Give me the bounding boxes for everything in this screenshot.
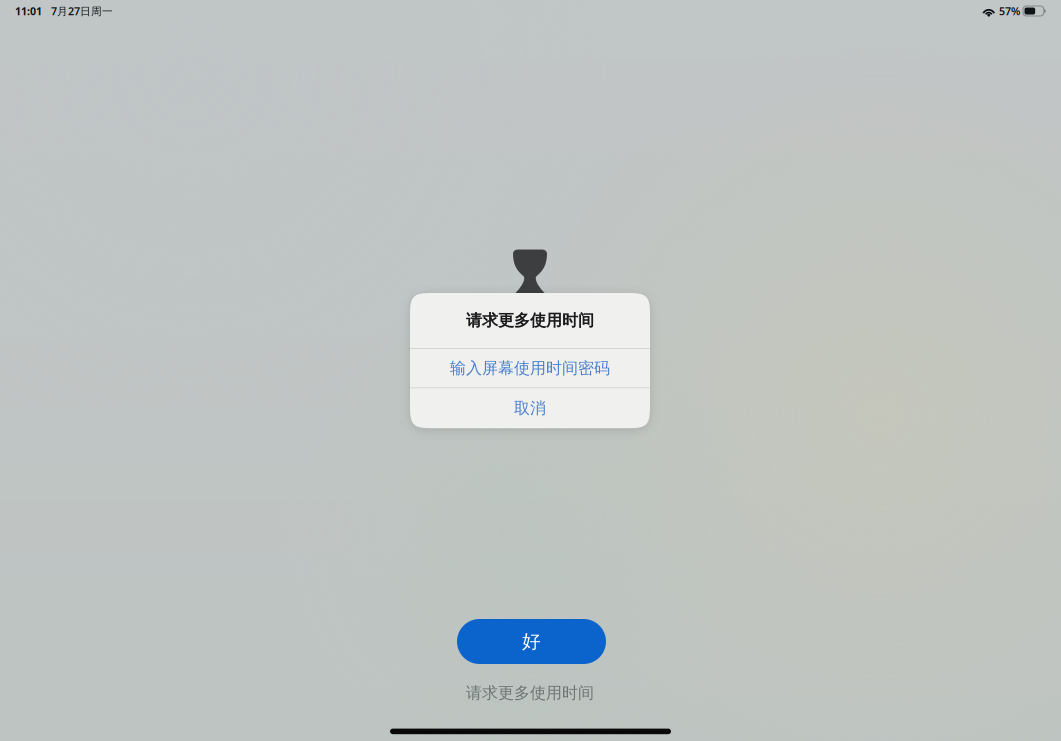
staticText: 57% bbox=[999, 4, 1020, 18]
button[interactable]: 好 bbox=[457, 619, 606, 664]
staticText: 7月27日周一 bbox=[51, 4, 113, 18]
staticText: 请求更多使用时间 bbox=[466, 683, 594, 703]
staticText: 取消 bbox=[514, 398, 546, 418]
staticText: 11:01 bbox=[15, 4, 42, 18]
staticText: 输入屏幕使用时间密码 bbox=[450, 358, 610, 378]
staticText: 请求更多使用时间 bbox=[466, 311, 594, 330]
staticText: 好 bbox=[522, 630, 541, 653]
button[interactable]: 输入屏幕使用时间密码 bbox=[410, 349, 650, 387]
button[interactable]: 取消 bbox=[410, 388, 650, 428]
